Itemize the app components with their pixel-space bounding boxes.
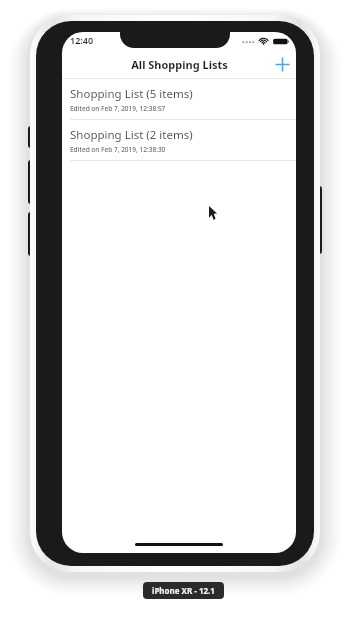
staticText: Edited on Feb 7, 2019, 12:38:30	[70, 145, 166, 154]
button[interactable]: Add shopping list	[268, 50, 296, 78]
staticText: Edited on Feb 7, 2019, 12:38:57	[70, 104, 166, 113]
staticText: All Shopping Lists	[131, 57, 228, 72]
button[interactable]: Shopping List (5 items)	[62, 79, 296, 119]
button[interactable]: Shopping List (2 items)	[62, 120, 296, 160]
staticText: Shopping List (2 items)	[70, 127, 193, 143]
staticText: iPhone XR - 12.1	[152, 585, 215, 596]
staticText: Shopping List (5 items)	[70, 86, 193, 102]
staticText: 12:40	[70, 34, 94, 46]
